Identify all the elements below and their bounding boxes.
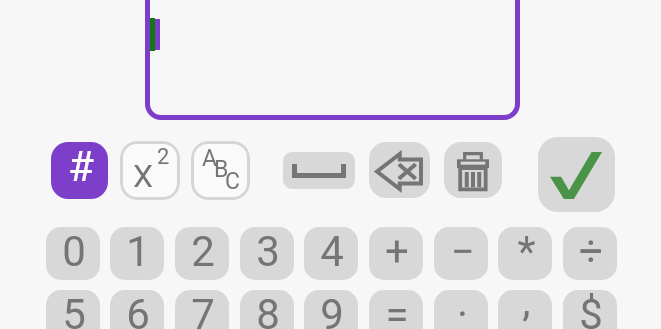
staticText: 0 xyxy=(62,227,86,276)
button[interactable]: ÷ xyxy=(563,227,617,280)
button[interactable]: Confirm xyxy=(538,137,615,212)
button[interactable]: Exponent xyxy=(120,141,180,200)
button[interactable]: − xyxy=(434,227,488,280)
staticText: 9 xyxy=(320,290,344,329)
button[interactable]: 5 xyxy=(46,290,100,329)
staticText: 4 xyxy=(320,227,344,276)
button[interactable]: 6 xyxy=(110,290,164,329)
button[interactable]: + xyxy=(369,227,423,280)
staticText: X xyxy=(133,157,154,195)
staticText: 8 xyxy=(256,290,280,329)
button[interactable]: * xyxy=(498,227,552,280)
button[interactable]: , xyxy=(498,290,552,329)
button[interactable]: 8 xyxy=(240,290,294,329)
staticText: # xyxy=(68,142,94,191)
staticText: 2 xyxy=(191,227,215,276)
staticText: 5 xyxy=(62,290,86,329)
button[interactable]: Space xyxy=(283,152,355,189)
staticText: ÷ xyxy=(579,227,603,276)
button[interactable]: 1 xyxy=(110,227,164,280)
button[interactable]: · xyxy=(434,290,488,329)
staticText: 3 xyxy=(256,227,280,276)
staticText: 2 xyxy=(157,144,170,170)
staticText: − xyxy=(450,227,475,276)
button[interactable]: Alphabet keys xyxy=(191,141,250,200)
button[interactable]: 7 xyxy=(175,290,229,329)
button[interactable]: $ xyxy=(563,290,617,329)
button[interactable]: 9 xyxy=(304,290,358,329)
button[interactable]: Number keys xyxy=(51,142,108,199)
staticText: , xyxy=(522,290,531,326)
staticText: B xyxy=(214,156,229,183)
staticText: · xyxy=(457,290,468,329)
button[interactable]: Backspace xyxy=(369,142,430,198)
staticText: * xyxy=(517,227,536,276)
button[interactable]: 3 xyxy=(240,227,294,280)
button[interactable]: = xyxy=(369,290,423,329)
button[interactable]: Delete xyxy=(444,142,502,198)
button[interactable]: 0 xyxy=(46,227,100,280)
button[interactable]: 2 xyxy=(175,227,229,280)
staticText: 1 xyxy=(126,227,150,276)
staticText: A xyxy=(202,145,218,172)
staticText: = xyxy=(385,290,409,329)
staticText: + xyxy=(385,227,409,276)
button[interactable]: 4 xyxy=(304,227,358,280)
staticText: C xyxy=(225,168,240,195)
staticText: 6 xyxy=(126,290,150,329)
staticText: $ xyxy=(579,290,603,329)
staticText: 7 xyxy=(191,290,215,329)
